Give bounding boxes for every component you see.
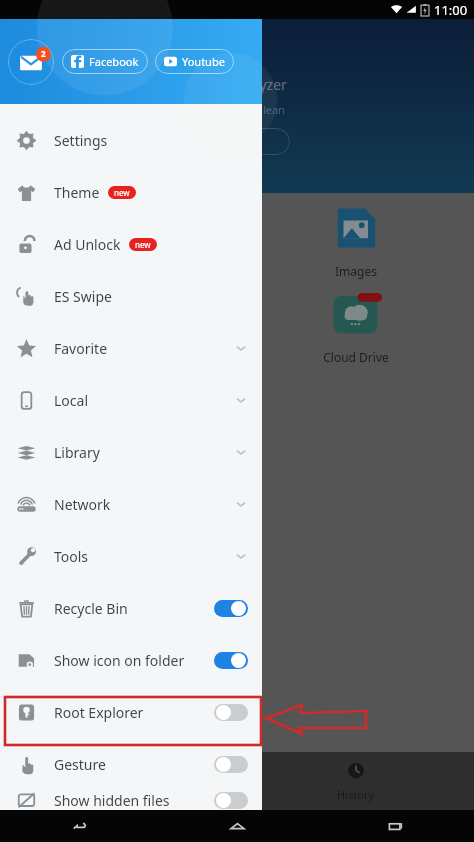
staticText: 2 (41, 48, 46, 59)
button[interactable]: Local (0, 374, 262, 426)
staticText: History (337, 787, 375, 802)
staticText: Logger (98, 349, 139, 365)
staticText: Theme (54, 183, 100, 202)
button[interactable]: Back (0, 810, 158, 842)
staticText: Show hidden files (54, 791, 170, 810)
button[interactable]: Library (0, 426, 262, 478)
staticText: Tools (54, 547, 89, 566)
staticText: new (114, 187, 130, 198)
button[interactable]: Show icon on folder (0, 634, 262, 686)
button[interactable]: Show icon on folder toggle (214, 652, 248, 669)
button[interactable]: Recycle Bin (0, 582, 262, 634)
button[interactable]: APP (0, 207, 237, 279)
button[interactable]: Facebook (62, 49, 148, 74)
button[interactable]: Recents (316, 810, 474, 842)
button[interactable]: Recycle Bin toggle (214, 600, 248, 617)
button[interactable]: Settings (0, 114, 262, 166)
staticText: Youtube (182, 54, 225, 69)
staticText: Favorite (54, 339, 108, 358)
staticText: Recycle Bin (54, 599, 128, 618)
staticText: Images (335, 263, 377, 279)
button[interactable]: Analyze (184, 128, 290, 155)
staticText: Show icon on folder (54, 651, 185, 670)
staticText: Ad Unlock (54, 235, 121, 254)
staticText: Local (54, 391, 88, 410)
staticText: Facebook (89, 54, 139, 69)
button[interactable]: Tools (0, 530, 262, 582)
staticText: Space Analyzer (188, 75, 287, 94)
staticText: new (135, 239, 151, 250)
staticText: ES Swipe (54, 287, 112, 306)
button[interactable]: Show hidden files (0, 790, 262, 810)
button[interactable]: Home (158, 810, 316, 842)
staticText: Gesture (54, 755, 106, 774)
staticText: more files to clean (190, 102, 285, 117)
button[interactable]: Cloud Drive (237, 293, 474, 365)
button[interactable]: History (237, 752, 474, 810)
button[interactable]: Youtube (155, 49, 234, 74)
button[interactable]: Root Explorer toggle (214, 704, 248, 721)
button[interactable]: Logger (0, 293, 237, 365)
button[interactable]: Show hidden files toggle (214, 792, 248, 809)
staticText: Root Explorer (54, 703, 144, 722)
staticText: Windows (95, 787, 142, 802)
button[interactable]: Windows (0, 752, 237, 810)
button[interactable]: Network (0, 478, 262, 530)
staticText: Settings (54, 131, 108, 150)
button[interactable]: Favorite (0, 322, 262, 374)
staticText: Library (54, 443, 100, 462)
button[interactable]: Theme (0, 166, 262, 218)
staticText: 11:00 (434, 1, 468, 19)
button[interactable]: Gesture toggle (214, 756, 248, 773)
staticText: Cloud Drive (323, 349, 389, 365)
button[interactable]: ES Swipe (0, 270, 262, 322)
button[interactable]: Root Explorer (0, 686, 262, 738)
button[interactable]: Ad Unlock (0, 218, 262, 270)
button[interactable]: Images (237, 207, 474, 279)
staticText: Network (54, 495, 111, 514)
button[interactable]: Messages (8, 39, 54, 85)
button[interactable]: Gesture (0, 738, 262, 790)
